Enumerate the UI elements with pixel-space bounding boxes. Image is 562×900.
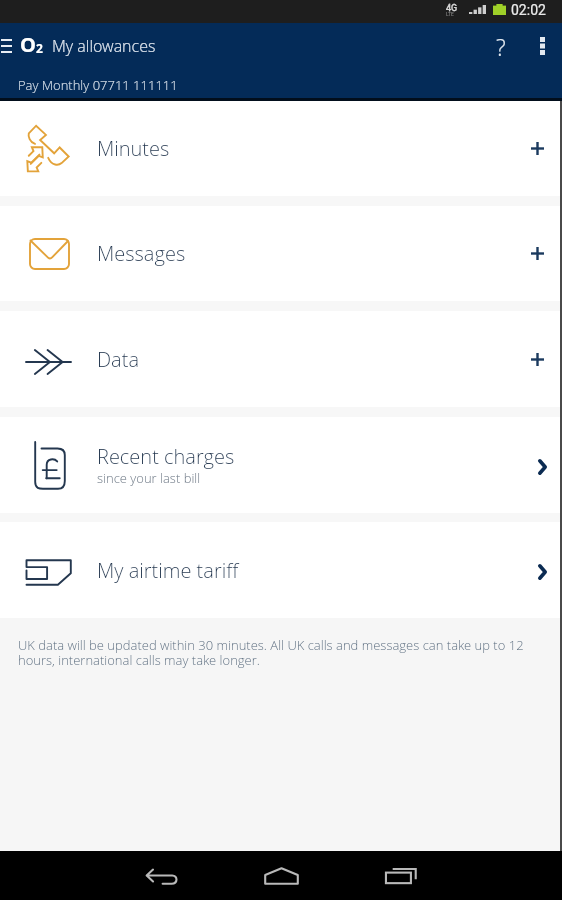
- button[interactable]: More options: [523, 23, 562, 68]
- staticText: Messages: [97, 240, 186, 267]
- button[interactable]: Back: [122, 851, 202, 900]
- staticText: 02:02: [511, 2, 546, 18]
- staticText: Recent charges: [97, 443, 235, 470]
- button[interactable]: Menu: [0, 23, 20, 68]
- staticText: O: [20, 31, 36, 58]
- button[interactable]: Recent apps: [361, 851, 441, 900]
- staticText: 4G: [446, 3, 458, 14]
- staticText: Pay Monthly 07711 111111: [18, 76, 178, 94]
- staticText: 2: [36, 40, 43, 56]
- button[interactable]: Home: [241, 851, 321, 900]
- staticText: Data: [97, 346, 140, 373]
- staticText: since your last bill: [97, 469, 201, 487]
- staticText: Minutes: [97, 135, 170, 162]
- staticText: My airtime tariff: [97, 557, 239, 584]
- button[interactable]: Data: [0, 311, 562, 407]
- button[interactable]: Minutes: [0, 101, 562, 196]
- staticText: LTE: [446, 11, 454, 17]
- button[interactable]: Messages: [0, 206, 562, 301]
- staticText: UK data will be updated within 30 minute…: [18, 636, 535, 669]
- button[interactable]: My airtime tariff: [0, 522, 562, 618]
- staticText: ?: [496, 31, 506, 62]
- button[interactable]: Recent charges: [0, 417, 562, 513]
- staticText: My allowances: [52, 35, 156, 57]
- button[interactable]: Help: [479, 23, 523, 68]
